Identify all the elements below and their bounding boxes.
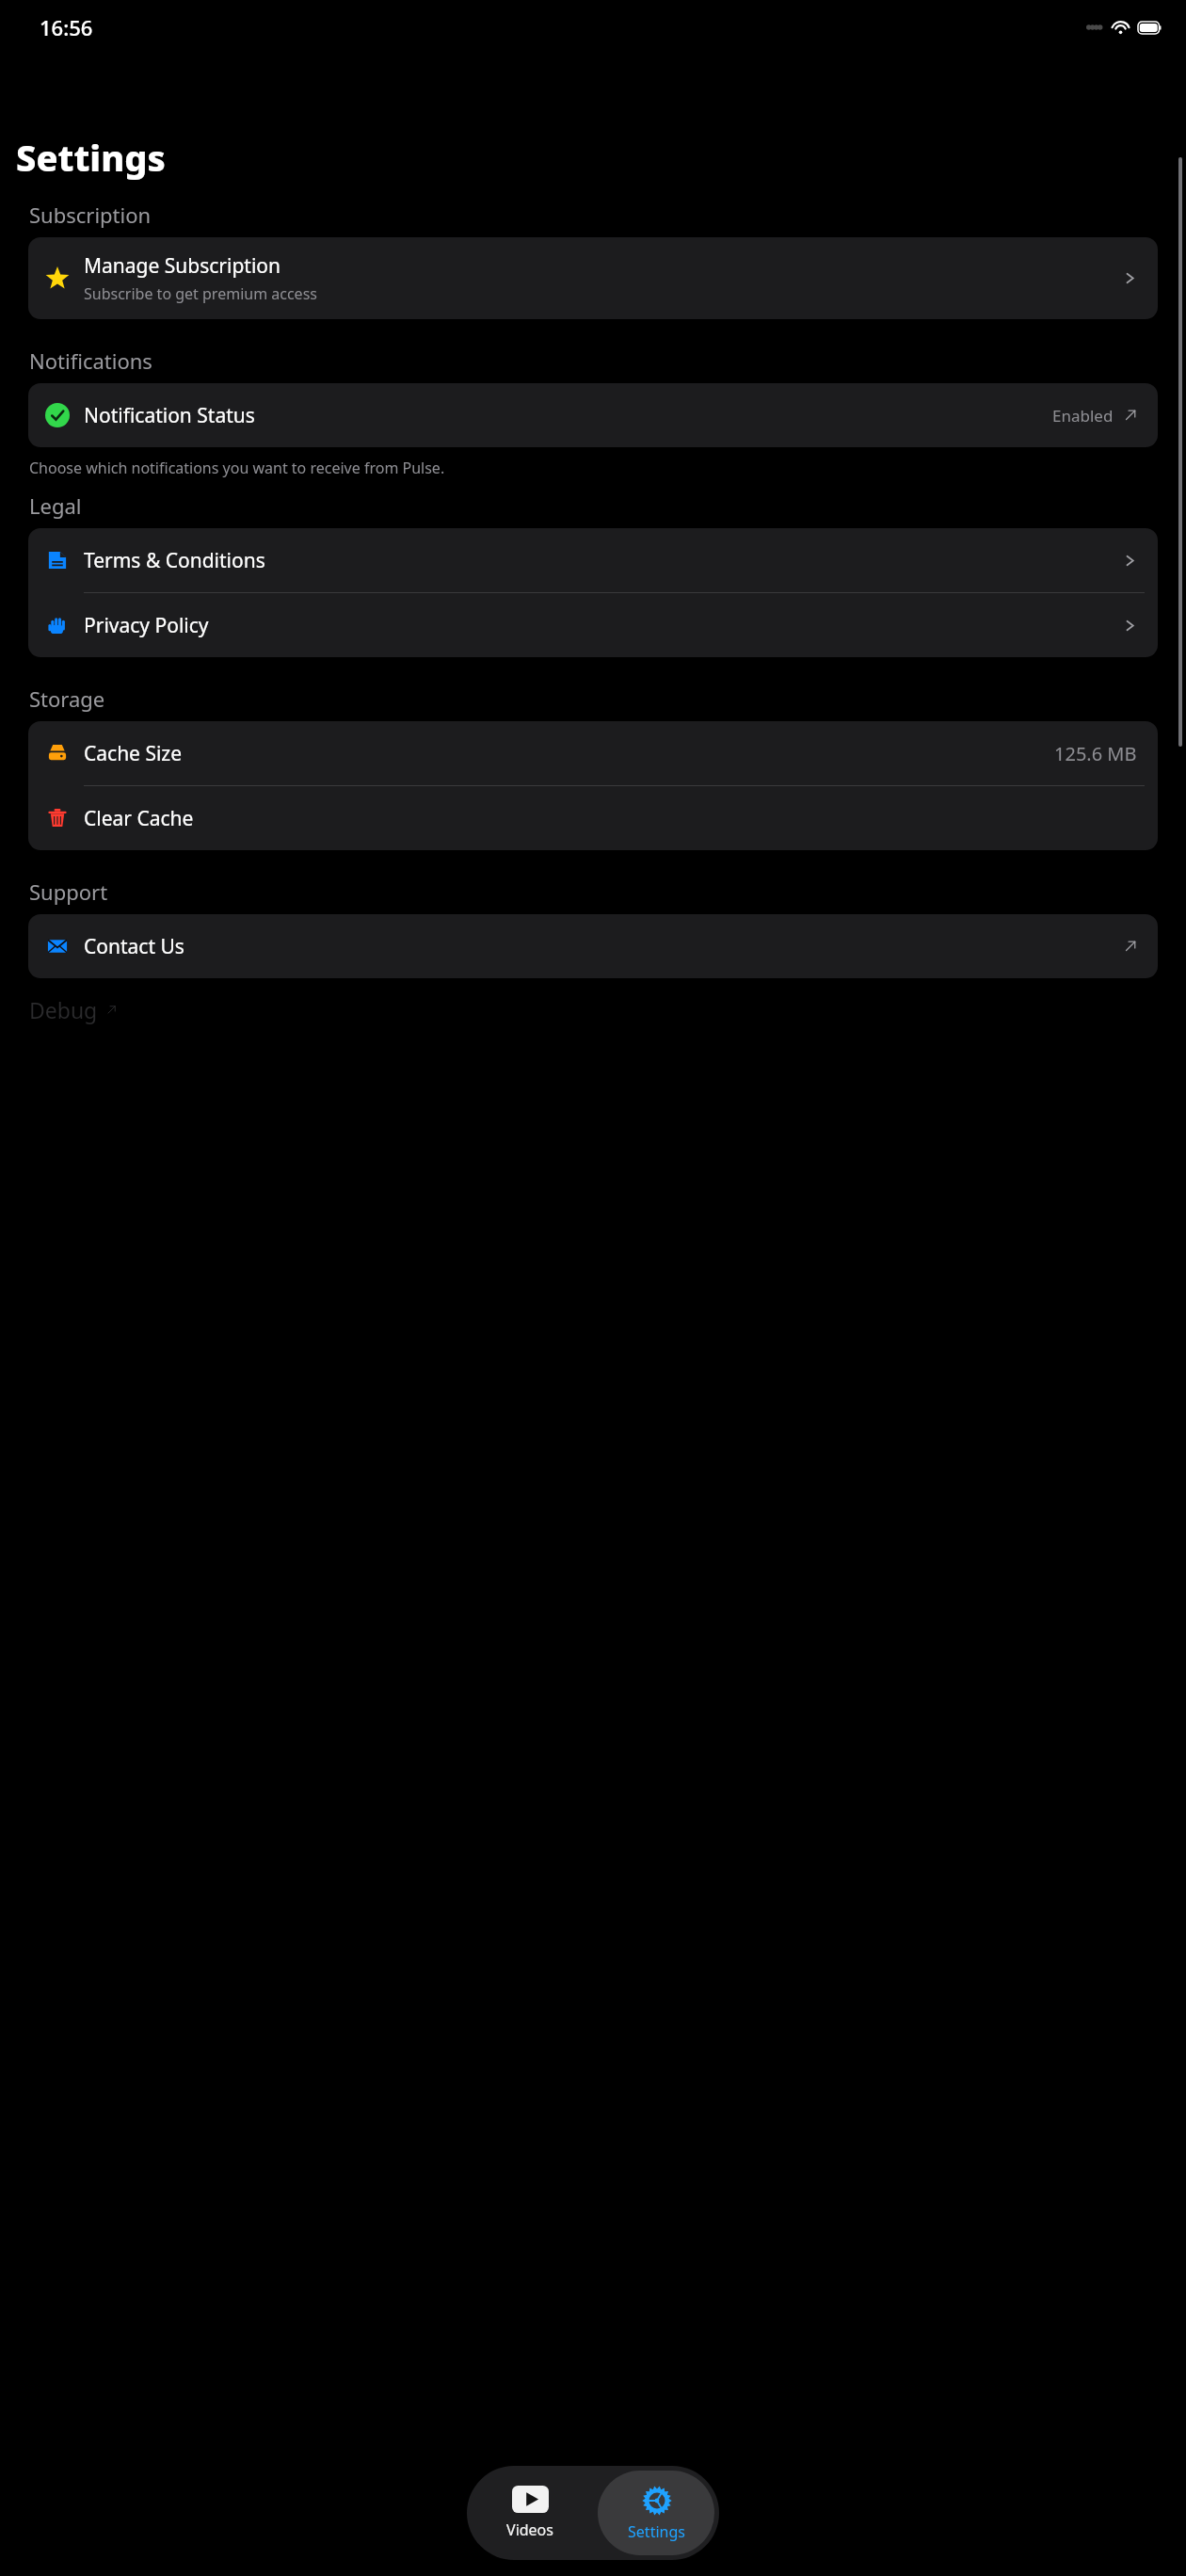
staticText: Clear Cache <box>84 805 1145 832</box>
button[interactable]: Cache Size <box>28 721 1158 785</box>
button[interactable]: Notification Status <box>28 383 1158 447</box>
staticText: Notifications <box>29 346 152 375</box>
staticText: Settings <box>16 133 166 182</box>
button[interactable]: Clear Cache <box>28 786 1158 850</box>
staticText: Videos <box>506 2520 553 2540</box>
button[interactable]: Settings <box>598 2471 714 2555</box>
staticText: Subscription <box>29 201 152 229</box>
staticText: Debug <box>29 995 98 1024</box>
staticText: Terms & Conditions <box>84 547 1123 574</box>
button[interactable]: Contact Us <box>28 914 1158 978</box>
button[interactable]: Privacy Policy <box>28 593 1158 657</box>
button[interactable]: Terms & Conditions <box>28 528 1158 592</box>
staticText: Choose which notifications you want to r… <box>29 458 445 478</box>
staticText: Legal <box>29 491 82 520</box>
staticText: Notification Status <box>84 402 1052 429</box>
staticText: Storage <box>29 684 105 713</box>
staticText: Enabled <box>1052 405 1114 427</box>
staticText: Manage Subscription <box>84 252 281 280</box>
button[interactable]: Videos <box>467 2466 593 2560</box>
staticText: Settings <box>628 2521 685 2542</box>
staticText: Support <box>29 877 108 906</box>
button[interactable]: Manage Subscription <box>28 237 1158 319</box>
staticText: Contact Us <box>84 933 1124 960</box>
staticText: Privacy Policy <box>84 612 1123 639</box>
staticText: Cache Size <box>84 740 1054 767</box>
staticText: 16:56 <box>40 13 93 41</box>
staticText: Subscribe to get premium access <box>84 283 317 304</box>
staticText: 125.6 MB <box>1054 741 1137 766</box>
